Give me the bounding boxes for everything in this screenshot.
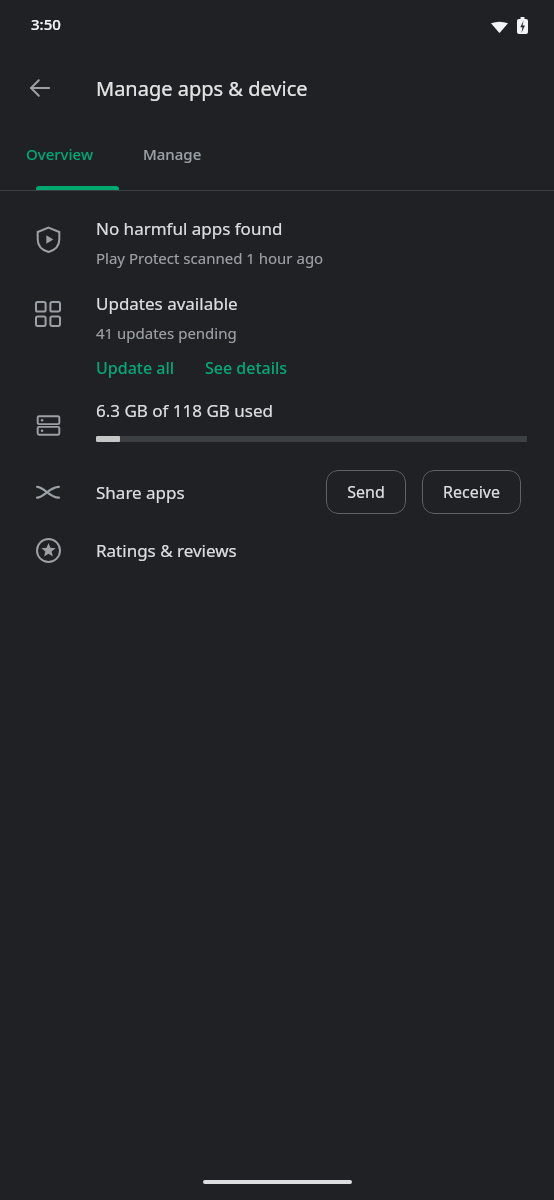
button[interactable]: Update all <box>96 357 175 379</box>
button[interactable]: Overview <box>0 126 119 190</box>
staticText: 3:50 <box>31 14 61 34</box>
button[interactable]: 6.3 GB of 118 GB used <box>0 399 554 442</box>
staticText: Update all <box>96 357 175 379</box>
staticText: Receive <box>443 481 500 503</box>
staticText: See details <box>205 357 288 379</box>
staticText: Play Protect scanned 1 hour ago <box>96 248 324 268</box>
staticText: Ratings & reviews <box>96 539 237 562</box>
button[interactable]: Back <box>16 64 64 112</box>
button[interactable]: See details <box>205 357 288 379</box>
button[interactable]: Ratings & reviews <box>0 532 554 568</box>
button[interactable]: Receive <box>422 470 521 514</box>
button[interactable]: Send <box>326 470 406 514</box>
staticText: Manage apps & device <box>96 75 308 102</box>
staticText: 41 updates pending <box>96 323 237 343</box>
staticText: Overview <box>26 144 93 164</box>
button[interactable]: No harmful apps found <box>0 217 554 268</box>
staticText: 6.3 GB of 118 GB used <box>96 399 273 422</box>
staticText: Send <box>347 481 385 503</box>
staticText: Share apps <box>96 481 185 504</box>
button[interactable]: Manage <box>119 126 225 190</box>
staticText: No harmful apps found <box>96 217 283 240</box>
staticText: Updates available <box>96 292 238 315</box>
staticText: Manage <box>143 144 202 164</box>
